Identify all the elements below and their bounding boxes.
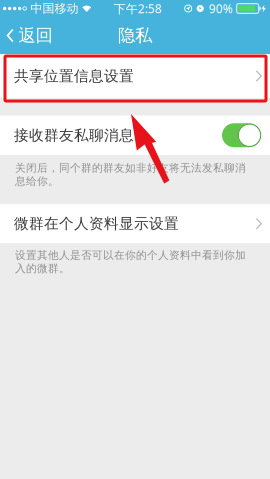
- staticText: 设置其他人是否可以在你的个人资料中看到你加入的微群。: [15, 249, 246, 275]
- staticText: 共享位置信息设置: [14, 67, 134, 85]
- staticText: 关闭后，同个群的群友如非好友将无法发私聊消息给你。: [15, 161, 246, 188]
- staticText: 隐私: [118, 25, 152, 46]
- staticText: 微群在个人资料显示设置: [14, 215, 179, 233]
- staticText: 中国移动: [30, 1, 78, 16]
- staticText: 90%: [209, 0, 233, 16]
- button[interactable]: 返回: [0, 17, 60, 54]
- button[interactable]: 微群在个人资料显示设置: [0, 204, 270, 243]
- button[interactable]: 接收群友私聊消息: [222, 123, 261, 147]
- staticText: 接收群友私聊消息: [14, 126, 134, 144]
- staticText: 下午2:58: [114, 0, 162, 16]
- staticText: 返回: [18, 25, 52, 46]
- button[interactable]: 共享位置信息设置: [0, 54, 270, 98]
